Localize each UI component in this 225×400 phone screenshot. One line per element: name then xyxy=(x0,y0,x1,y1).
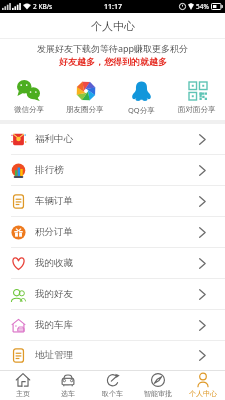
button[interactable]: 取个车 xyxy=(90,371,135,400)
staticText: QQ分享 xyxy=(128,105,155,115)
button[interactable]: 朋友圈分享 xyxy=(57,80,113,114)
staticText: 地址管理 xyxy=(35,349,73,361)
staticText: 个人中心 xyxy=(189,389,217,398)
button[interactable]: 我的好友 xyxy=(0,279,225,310)
button[interactable]: 排行榜 xyxy=(0,155,225,186)
staticText: 智能审批 xyxy=(144,389,172,398)
button[interactable]: 微信分享 xyxy=(0,80,57,114)
button[interactable]: 我的车库 xyxy=(0,310,225,341)
staticText: 发展好友下载勿等待app赚取更多积分 xyxy=(37,42,189,54)
staticText: 11:17 xyxy=(104,2,122,12)
staticText: 微信分享 xyxy=(14,105,44,114)
button[interactable]: 福利中心 xyxy=(0,124,225,155)
staticText: 54% xyxy=(196,2,209,11)
staticText: 朋友圈分享 xyxy=(66,105,104,114)
button[interactable]: 主页 xyxy=(0,371,45,400)
staticText: 选车 xyxy=(61,389,75,398)
staticText: 2 KB/s xyxy=(33,2,53,11)
button[interactable]: 车辆订单 xyxy=(0,186,225,217)
staticText: 个人中心 xyxy=(91,19,135,33)
staticText: 面对面分享 xyxy=(178,105,216,114)
button[interactable]: 我的收藏 xyxy=(0,248,225,279)
staticText: 排行榜 xyxy=(35,164,64,176)
staticText: 福利中心 xyxy=(35,133,73,145)
button[interactable]: 地址管理 xyxy=(0,341,225,370)
staticText: 积分订单 xyxy=(35,226,73,238)
staticText: 好友越多，您得到的就越多 xyxy=(59,56,167,67)
staticText: 我的车库 xyxy=(35,319,73,331)
button[interactable]: 选车 xyxy=(45,371,90,400)
button[interactable]: 智能审批 xyxy=(135,371,180,400)
staticText: 取个车 xyxy=(102,389,123,398)
staticText: 我的好友 xyxy=(35,288,73,300)
button[interactable]: QQ分享 xyxy=(113,80,169,115)
button[interactable]: 积分订单 xyxy=(0,217,225,248)
button[interactable]: 个人中心 xyxy=(180,371,225,400)
staticText: 主页 xyxy=(16,389,30,398)
button[interactable]: 面对面分享 xyxy=(169,80,225,114)
staticText: 我的收藏 xyxy=(35,257,73,269)
staticText: 车辆订单 xyxy=(35,195,73,207)
